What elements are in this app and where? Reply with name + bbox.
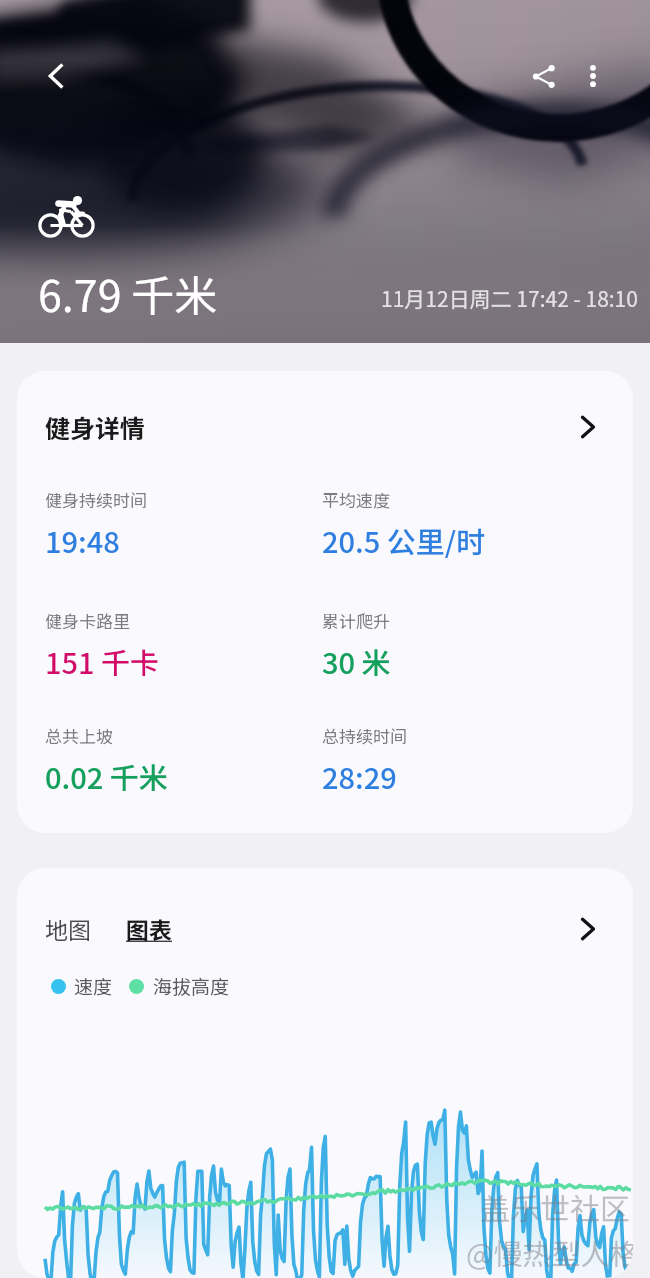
staticText: 平均速度 xyxy=(322,487,390,512)
staticText: 6.79 千米 xyxy=(38,262,218,324)
staticText: 19:48 xyxy=(45,519,120,561)
staticText: @慢热型人格 xyxy=(466,1231,633,1273)
button[interactable]: 健身详情 xyxy=(17,371,633,833)
staticText: 海拔高度 xyxy=(153,972,230,1000)
staticText: 20.5 公里/时 xyxy=(322,519,486,561)
staticText: 累计爬升 xyxy=(322,608,390,633)
button[interactable]: Share xyxy=(516,49,570,103)
staticText: 0.02 千米 xyxy=(45,755,168,797)
staticText: 健身详情 xyxy=(45,409,146,445)
staticText: 30 米 xyxy=(322,640,391,682)
button[interactable]: 图表 xyxy=(126,912,172,945)
staticText: 健身持续时间 xyxy=(45,487,147,512)
button[interactable]: 地图 xyxy=(17,868,633,1278)
button[interactable]: Back xyxy=(29,49,83,103)
staticText: 速度 xyxy=(74,972,113,1000)
staticText: 151 千卡 xyxy=(45,640,160,682)
staticText: 11月12日周二 17:42 - 18:10 xyxy=(381,283,638,313)
staticText: 健身卡路里 xyxy=(45,608,130,633)
button[interactable]: More options xyxy=(566,49,620,103)
staticText: 28:29 xyxy=(322,755,397,797)
button[interactable]: 地图 xyxy=(45,912,91,945)
staticText: 盖乐世社区 xyxy=(480,1185,630,1228)
staticText: 总持续时间 xyxy=(322,723,407,748)
staticText: 总共上坡 xyxy=(45,723,113,748)
